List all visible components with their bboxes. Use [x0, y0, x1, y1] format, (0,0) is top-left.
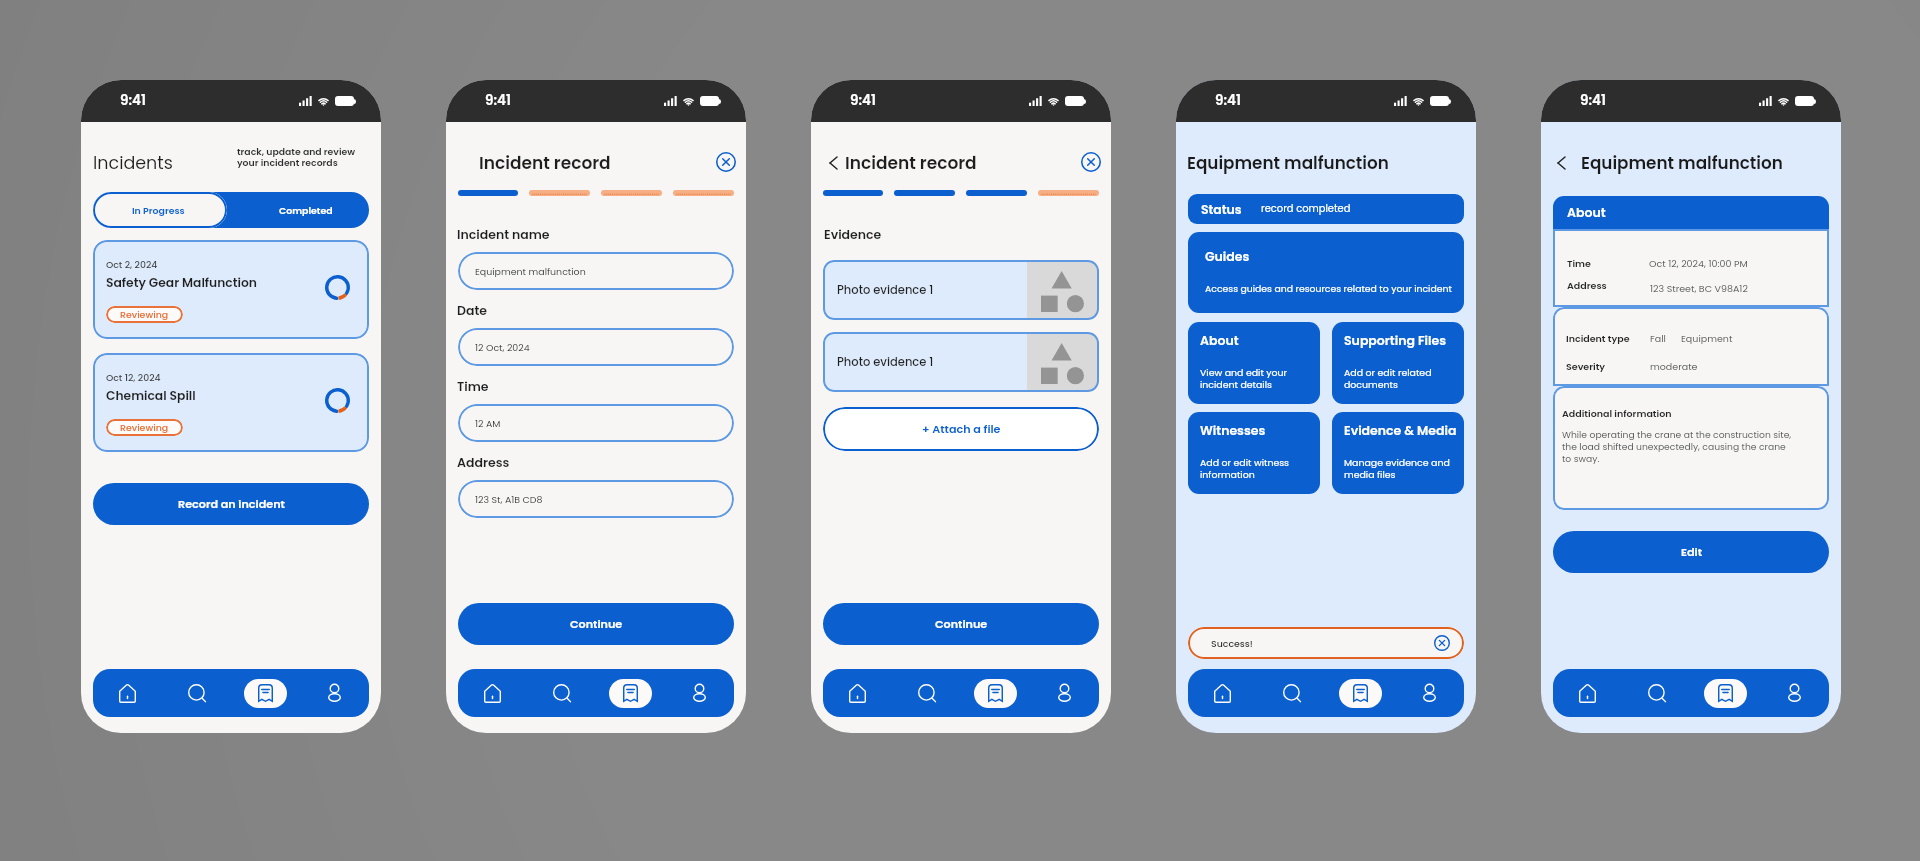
staticText: Equipment malfunction [475, 265, 586, 278]
staticText: 123 Street, BC V98A12 [1650, 282, 1748, 295]
staticText: 9:41 [485, 91, 511, 110]
staticText: Safety Gear Malfunction [106, 274, 257, 291]
staticText: Oct 12, 2024, 10:00 PM [1649, 257, 1748, 270]
button[interactable]: Continue [823, 603, 1099, 645]
staticText: + Attach a file [922, 421, 1001, 437]
staticText: moderate [1650, 360, 1698, 373]
button[interactable]: Records [1326, 669, 1395, 717]
staticText: Supporting Files [1344, 332, 1446, 349]
button[interactable]: Back [830, 157, 837, 169]
staticText: Add or edit related documents [1344, 366, 1432, 391]
button[interactable]: Continue [458, 603, 734, 645]
button[interactable]: Back [1558, 157, 1565, 169]
staticText: Record an incident [178, 496, 285, 512]
button[interactable]: Records [1691, 669, 1760, 717]
button[interactable]: Close [716, 152, 736, 172]
staticText: Equipment malfunction [1187, 151, 1389, 175]
staticText: Address [1567, 279, 1607, 292]
button[interactable]: Home [1188, 669, 1257, 717]
staticText: Chemical Spill [106, 387, 196, 404]
staticText: Evidence & Media [1344, 422, 1457, 439]
button[interactable]: Oct 12, 2024 [93, 353, 369, 452]
staticText: About [1200, 332, 1239, 349]
staticText: 9:41 [1580, 91, 1606, 110]
staticText: Incident record [845, 151, 977, 175]
button[interactable]: Equipment malfunction [458, 252, 734, 290]
button[interactable]: In Progress [93, 192, 227, 228]
button[interactable]: Search [162, 669, 231, 717]
button[interactable]: Search [527, 669, 596, 717]
staticText: Time [1567, 257, 1591, 270]
staticText: In Progress [132, 204, 185, 217]
button[interactable]: + Attach a file [823, 407, 1099, 451]
button[interactable]: Home [93, 669, 162, 717]
button[interactable]: Evidence & Media [1332, 412, 1464, 494]
staticText: Continue [935, 616, 988, 632]
button[interactable]: Search [1257, 669, 1326, 717]
staticText: While operating the crane at the constru… [1562, 428, 1792, 465]
staticText: Additional information [1562, 407, 1672, 420]
staticText: Time [457, 378, 489, 395]
button[interactable]: Records [596, 669, 665, 717]
staticText: 12 Oct, 2024 [475, 341, 530, 354]
staticText: Equipment malfunction [1581, 151, 1783, 175]
button[interactable]: Records [961, 669, 1030, 717]
staticText: Oct 12, 2024 [106, 371, 161, 384]
button[interactable]: Photo evidence 1 [823, 332, 1099, 392]
staticText: Success! [1211, 637, 1253, 650]
button[interactable]: Oct 2, 2024 [93, 240, 369, 339]
button[interactable]: 12 Oct, 2024 [458, 328, 734, 366]
button[interactable]: Status [1188, 194, 1464, 224]
staticText: View and edit your incident details [1200, 366, 1288, 391]
button[interactable]: Witnesses [1188, 412, 1320, 494]
button[interactable]: Photo evidence 1 [823, 260, 1099, 320]
button[interactable]: 12 AM [458, 404, 734, 442]
button[interactable]: About [1188, 322, 1320, 404]
button[interactable]: Home [458, 669, 527, 717]
staticText: 12 AM [475, 417, 501, 430]
staticText: Photo evidence 1 [837, 282, 1027, 298]
button[interactable]: Edit [1553, 531, 1829, 573]
staticText: Evidence [824, 226, 882, 243]
button[interactable]: Profile [665, 669, 734, 717]
button[interactable]: Success! [1188, 627, 1464, 659]
staticText: Continue [570, 616, 623, 632]
staticText: Reviewing [120, 308, 169, 321]
button[interactable]: Home [1553, 669, 1622, 717]
staticText: Incident name [457, 226, 550, 243]
staticText: Add or edit witness information [1200, 456, 1290, 481]
button[interactable]: Supporting Files [1332, 322, 1464, 404]
button[interactable]: Records [231, 669, 300, 717]
staticText: Witnesses [1200, 422, 1266, 439]
staticText: track, update and review your incident r… [237, 145, 356, 170]
staticText: 9:41 [1215, 91, 1241, 110]
button[interactable]: Guides [1188, 232, 1464, 313]
button[interactable]: Profile [1030, 669, 1099, 717]
staticText: Fall [1650, 332, 1666, 345]
staticText: About [1567, 204, 1606, 221]
staticText: 9:41 [850, 91, 876, 110]
staticText: Incident record [479, 151, 611, 175]
button[interactable]: Record an incident [93, 483, 369, 525]
staticText: record completed [1261, 202, 1351, 216]
staticText: Severity [1566, 360, 1606, 373]
button[interactable]: Home [823, 669, 892, 717]
button[interactable]: 123 St, A1B CD8 [458, 480, 734, 518]
staticText: Incident type [1566, 332, 1630, 345]
staticText: 123 St, A1B CD8 [475, 493, 543, 506]
button[interactable]: Search [1622, 669, 1691, 717]
button[interactable]: Close [1081, 152, 1101, 172]
staticText: Manage evidence and media files [1344, 456, 1450, 481]
button[interactable]: Profile [1760, 669, 1829, 717]
staticText: Photo evidence 1 [837, 354, 1027, 370]
staticText: Edit [1681, 544, 1702, 560]
button[interactable]: Profile [1395, 669, 1464, 717]
staticText: Status [1201, 201, 1242, 218]
staticText: Reviewing [120, 421, 169, 434]
staticText: Date [457, 302, 488, 319]
button[interactable]: Profile [300, 669, 369, 717]
button[interactable]: Completed [227, 192, 369, 228]
staticText: Equipment [1681, 332, 1733, 345]
button[interactable]: Search [892, 669, 961, 717]
staticText: 9:41 [120, 91, 146, 110]
